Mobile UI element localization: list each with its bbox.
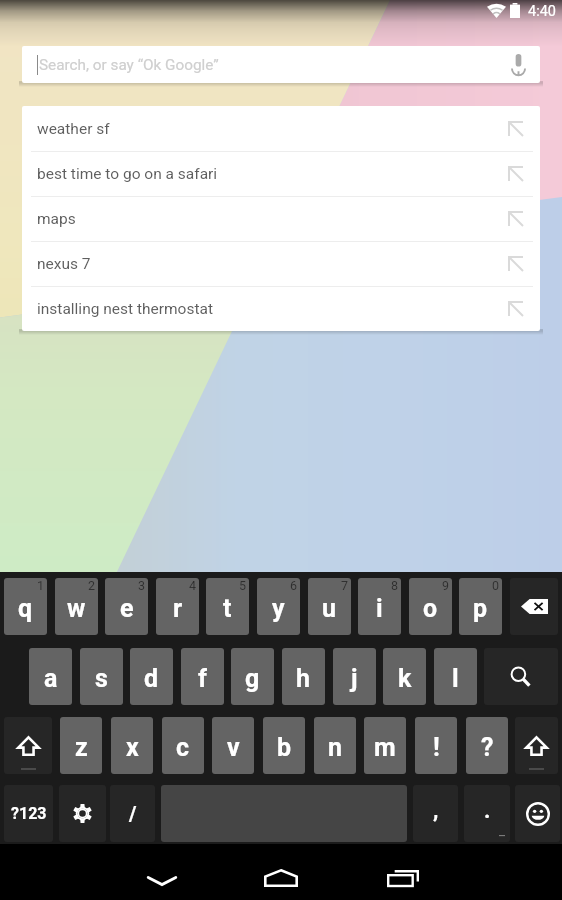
staticText: a: [44, 664, 58, 693]
staticText: !: [433, 733, 440, 762]
staticText: b: [277, 733, 292, 762]
staticText: Search, or say “Ok Google”: [39, 56, 219, 74]
button[interactable]: !: [415, 717, 457, 774]
button[interactable]: /: [110, 785, 155, 842]
button[interactable]: w: [55, 578, 98, 635]
staticText: 6: [290, 578, 298, 593]
staticText: j: [351, 664, 358, 693]
button[interactable]: b: [263, 717, 305, 774]
button[interactable]: .: [464, 785, 510, 842]
button[interactable]: Hide keyboard: [122, 844, 202, 900]
button[interactable]: Search: [484, 648, 558, 705]
staticText: r: [173, 594, 183, 623]
staticText: y: [272, 594, 285, 623]
staticText: i: [376, 594, 383, 623]
button[interactable]: best time to go on a safari: [22, 151, 540, 196]
staticText: s: [95, 664, 108, 693]
staticText: d: [144, 664, 159, 693]
staticText: 7: [341, 578, 349, 593]
staticText: 5: [239, 578, 247, 593]
button[interactable]: i: [358, 578, 401, 635]
staticText: l: [452, 664, 459, 693]
button[interactable]: Backspace: [510, 578, 558, 635]
button[interactable]: l: [434, 648, 477, 705]
button[interactable]: Search, or say “Ok Google”: [22, 46, 540, 83]
staticText: maps: [37, 210, 76, 228]
staticText: ,: [433, 798, 439, 824]
button[interactable]: t: [206, 578, 249, 635]
button[interactable]: q: [4, 578, 47, 635]
button[interactable]: y: [257, 578, 300, 635]
staticText: c: [176, 733, 190, 762]
staticText: 1: [37, 578, 45, 593]
staticText: m: [374, 733, 396, 762]
staticText: 2: [88, 578, 96, 593]
staticText: w: [67, 594, 86, 623]
button[interactable]: nexus 7: [22, 241, 540, 286]
staticText: z: [75, 733, 88, 762]
button[interactable]: o: [409, 578, 452, 635]
button[interactable]: Use this suggestion: [492, 106, 540, 151]
button[interactable]: e: [105, 578, 148, 635]
staticText: nexus 7: [37, 255, 91, 273]
button[interactable]: weather sf: [22, 106, 540, 151]
button[interactable]: x: [111, 717, 153, 774]
button[interactable]: h: [282, 648, 325, 705]
button[interactable]: r: [156, 578, 199, 635]
staticText: 9: [442, 578, 450, 593]
staticText: f: [198, 664, 207, 693]
staticText: o: [423, 594, 438, 623]
staticText: p: [473, 594, 488, 623]
button[interactable]: installing nest thermostat: [22, 286, 540, 331]
button[interactable]: j: [333, 648, 376, 705]
staticText: ?123: [11, 804, 47, 823]
staticText: installing nest thermostat: [37, 300, 214, 318]
staticText: weather sf: [37, 120, 110, 138]
button[interactable]: ,: [413, 785, 458, 842]
button[interactable]: u: [308, 578, 351, 635]
staticText: t: [223, 594, 232, 623]
button[interactable]: Voice search: [496, 46, 540, 83]
button[interactable]: ?123: [4, 785, 53, 842]
button[interactable]: c: [162, 717, 204, 774]
button[interactable]: z: [60, 717, 102, 774]
staticText: n: [328, 733, 343, 762]
button[interactable]: Shift: [515, 717, 558, 774]
button[interactable]: ?: [466, 717, 508, 774]
button[interactable]: Settings: [59, 785, 106, 842]
button[interactable]: v: [212, 717, 254, 774]
staticText: h: [296, 664, 311, 693]
button[interactable]: Shift: [4, 717, 52, 774]
staticText: 4:40: [528, 3, 556, 20]
staticText: k: [398, 664, 412, 693]
staticText: .: [484, 798, 491, 824]
button[interactable]: Use this suggestion: [492, 286, 540, 331]
button[interactable]: m: [364, 717, 406, 774]
button[interactable]: Use this suggestion: [492, 196, 540, 241]
button[interactable]: Recent apps: [363, 844, 443, 900]
staticText: best time to go on a safari: [37, 165, 218, 183]
button[interactable]: Use this suggestion: [492, 241, 540, 286]
staticText: v: [227, 733, 240, 762]
staticText: 4: [189, 578, 197, 593]
button[interactable]: Home: [241, 844, 321, 900]
button[interactable]: f: [181, 648, 224, 705]
staticText: 8: [391, 578, 399, 593]
button[interactable]: p: [459, 578, 502, 635]
staticText: /: [129, 802, 137, 825]
button[interactable]: k: [383, 648, 426, 705]
button[interactable]: a: [29, 648, 72, 705]
staticText: •••: [499, 832, 506, 839]
button[interactable]: s: [80, 648, 123, 705]
button[interactable]: Emoji: [515, 785, 560, 842]
button[interactable]: maps: [22, 196, 540, 241]
staticText: ?: [481, 733, 494, 762]
staticText: e: [120, 594, 134, 623]
button[interactable]: n: [314, 717, 356, 774]
button[interactable]: g: [231, 648, 274, 705]
button[interactable]: Use this suggestion: [492, 151, 540, 196]
staticText: g: [245, 664, 260, 693]
staticText: u: [322, 594, 337, 623]
button[interactable]: d: [130, 648, 173, 705]
